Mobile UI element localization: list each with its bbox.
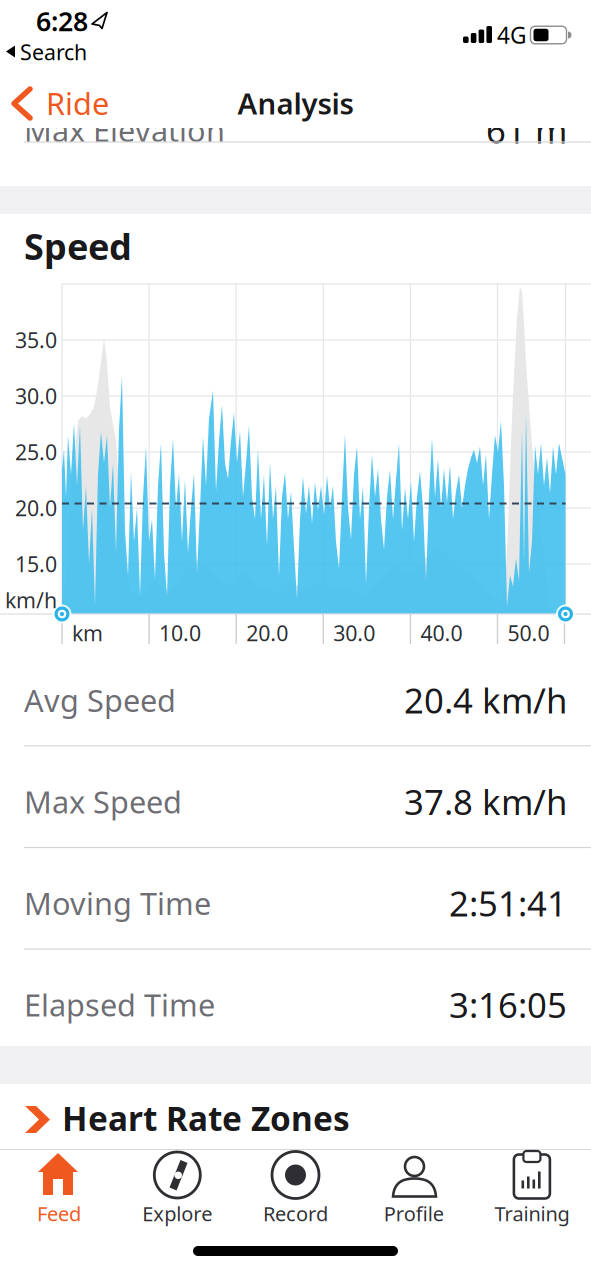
staticText: Max Speed: [24, 781, 182, 822]
staticText: 6:28: [36, 3, 88, 39]
staticText: 10.0: [159, 619, 201, 647]
staticText: Analysis: [237, 83, 353, 122]
staticText: 37.8 km/h: [404, 778, 567, 824]
staticText: Moving Time: [24, 883, 211, 923]
staticText: Speed: [24, 222, 132, 270]
staticText: 30.0: [333, 619, 375, 647]
staticText: Search: [20, 38, 87, 66]
staticText: 2:51:41: [449, 880, 567, 926]
staticText: Explore: [142, 1200, 212, 1227]
staticText: Avg Speed: [24, 680, 176, 720]
staticText: 3:16:05: [449, 981, 567, 1027]
staticText: 30.0: [15, 382, 57, 410]
staticText: Feed: [37, 1200, 81, 1227]
staticText: Ride: [46, 83, 109, 123]
staticText: Training: [494, 1200, 569, 1227]
staticText: 20.0: [15, 494, 57, 522]
staticText: 40.0: [420, 619, 462, 647]
staticText: km/h: [5, 586, 57, 614]
staticText: 61 m: [486, 107, 567, 153]
staticText: Profile: [384, 1200, 444, 1227]
staticText: km: [72, 619, 103, 647]
staticText: 4G: [497, 20, 527, 50]
staticText: 20.0: [246, 619, 288, 647]
staticText: Elapsed Time: [24, 984, 215, 1025]
staticText: 25.0: [15, 438, 57, 466]
staticText: Record: [263, 1200, 328, 1227]
staticText: 20.4 km/h: [404, 677, 567, 723]
staticText: Max Elevation: [24, 110, 225, 150]
staticText: 15.0: [15, 550, 57, 578]
staticText: Heart Rate Zones: [62, 1096, 350, 1140]
staticText: 50.0: [507, 619, 549, 647]
staticText: 35.0: [15, 326, 57, 354]
